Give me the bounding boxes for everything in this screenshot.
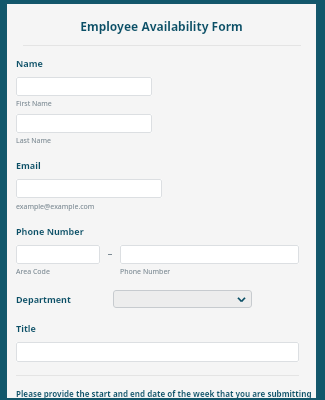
button[interactable]: Text input field	[120, 245, 299, 264]
button[interactable]: Text input field	[16, 114, 152, 133]
staticText: Title	[16, 322, 36, 334]
staticText: Please provide the start and end date of…	[16, 388, 312, 399]
button[interactable]: Text input field	[16, 77, 152, 96]
staticText: Name	[16, 57, 43, 69]
button[interactable]: Department dropdown	[113, 290, 252, 308]
staticText: Phone Number	[120, 267, 171, 277]
staticText: First Name	[16, 99, 52, 109]
button[interactable]: Text input field	[16, 245, 100, 264]
staticText: Last Name	[16, 136, 52, 146]
button[interactable]: Text input field	[16, 179, 162, 198]
button[interactable]: Text input field	[16, 342, 299, 362]
staticText: Area Code	[16, 267, 50, 277]
staticText: Department	[16, 293, 71, 305]
staticText: Email	[16, 159, 41, 171]
staticText: Employee Availability Form	[5, 18, 318, 34]
staticText: example@example.com	[16, 202, 95, 212]
staticText: Phone Number	[16, 225, 84, 237]
